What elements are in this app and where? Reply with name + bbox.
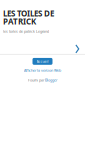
button[interactable]: Open navigation [75, 44, 80, 54]
staticText: Afficher la version Web [24, 68, 61, 73]
button[interactable]: Accueil [32, 58, 52, 65]
button[interactable]: Afficher la version Web [24, 68, 61, 73]
staticText: les toiles de patrick Legrand [3, 29, 49, 34]
staticText: Fourni par [28, 78, 44, 83]
staticText: PATRICK [3, 16, 36, 27]
staticText: Blogger [45, 78, 57, 83]
staticText: Accueil [36, 59, 48, 64]
staticText: LES TOILES DE [3, 8, 54, 19]
button[interactable]: Blogger [45, 78, 57, 83]
